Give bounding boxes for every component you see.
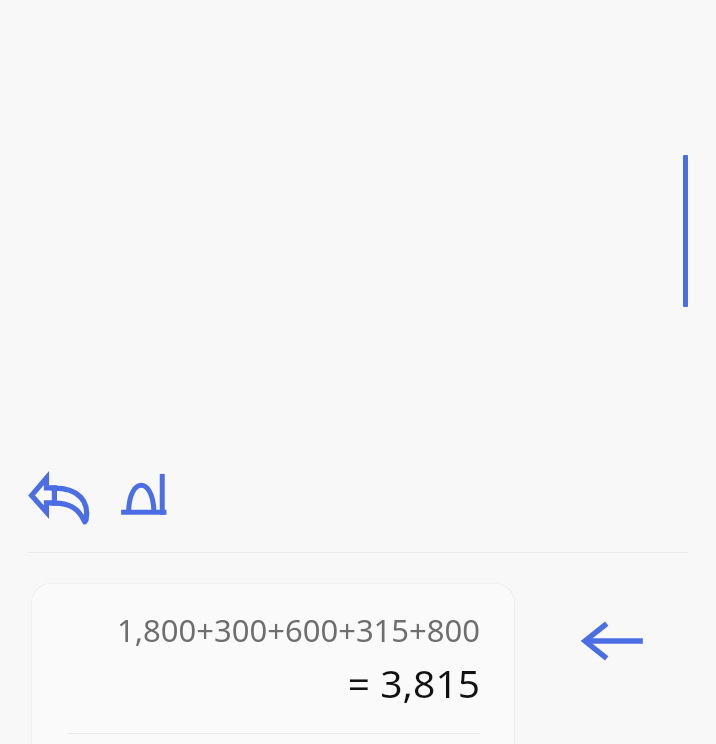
staticText: 1,800+300+600+315+800	[31, 609, 480, 653]
button[interactable]: Back	[575, 611, 649, 671]
button[interactable]: 1,800+300+600+315+800	[31, 583, 515, 744]
staticText: = 3,815	[31, 656, 480, 708]
button[interactable]: Undo	[28, 466, 94, 526]
button[interactable]: Graph	[118, 468, 174, 524]
